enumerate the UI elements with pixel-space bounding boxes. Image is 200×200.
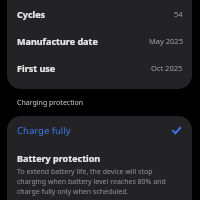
staticText: Charging protection <box>17 98 84 108</box>
staticText: Cycles <box>17 8 46 20</box>
staticText: Oct 2025 <box>151 63 183 73</box>
staticText: To extend battery life, the device will … <box>17 167 183 197</box>
staticText: Manufacture date <box>17 35 98 47</box>
staticText: May 2025 <box>149 36 183 46</box>
button[interactable]: Manufacture date <box>7 27 192 54</box>
button[interactable]: First use <box>7 54 192 81</box>
staticText: Charge fully <box>17 124 170 137</box>
staticText: First use <box>17 62 56 74</box>
button[interactable]: Cycles <box>7 0 192 27</box>
staticText: Battery protection <box>17 152 101 164</box>
other: Selected <box>170 124 183 137</box>
button[interactable]: Charge fully <box>7 116 192 144</box>
staticText: 54 <box>174 9 183 19</box>
